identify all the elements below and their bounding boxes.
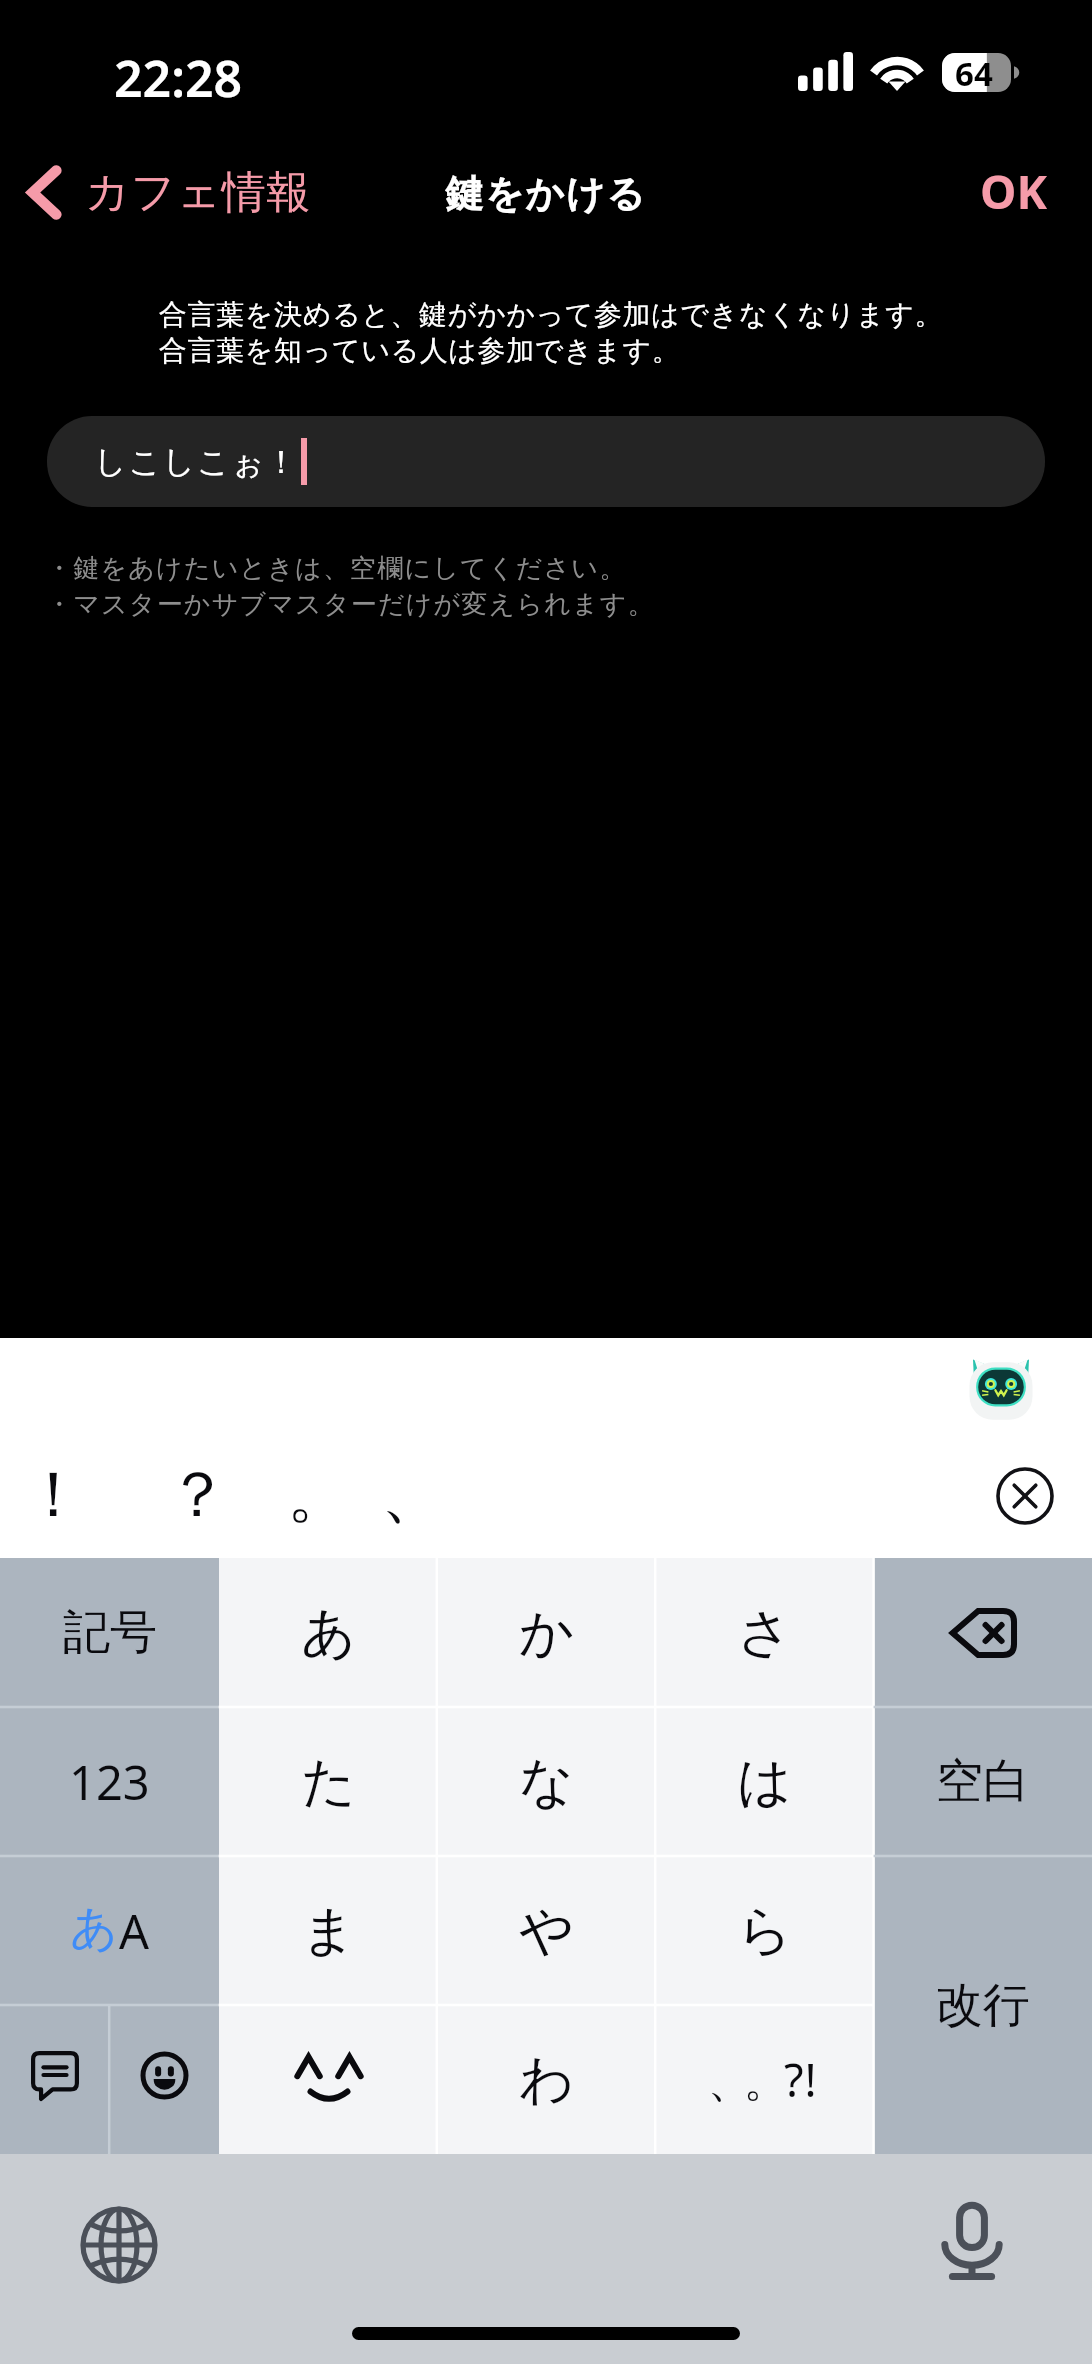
button[interactable]: ま (219, 1856, 438, 2005)
staticText: OK (980, 160, 1047, 223)
button[interactable]: Emoji (109, 2005, 219, 2154)
button[interactable]: は (656, 1707, 874, 1856)
button[interactable]: か (438, 1558, 656, 1707)
staticText: 、 (381, 1455, 444, 1534)
button[interactable]: Kaomoji (219, 2005, 438, 2154)
staticText: A (119, 1899, 150, 1963)
button[interactable]: や (438, 1856, 656, 2005)
staticText: ！ (22, 1455, 85, 1534)
button[interactable]: Conversion candidates (0, 2005, 109, 2154)
staticText: 改行 (936, 1976, 1030, 2035)
staticText: しこしこぉ！ (94, 442, 299, 482)
staticText: 、。 (712, 2053, 784, 2110)
staticText: さ (737, 1599, 793, 1667)
button[interactable]: 、。 (656, 2005, 874, 2154)
button[interactable]: Backspace (874, 1558, 1092, 1707)
button[interactable]: Dictation (932, 2202, 1012, 2282)
button[interactable]: Clear (996, 1467, 1054, 1525)
staticText: 64 (955, 51, 993, 90)
staticText: か (519, 1599, 575, 1667)
button[interactable]: た (219, 1707, 438, 1856)
button[interactable]: 改行 (874, 1856, 1092, 2154)
staticText: ま (301, 1897, 357, 1965)
staticText: た (301, 1748, 357, 1816)
button[interactable]: しこしこぉ！ (47, 416, 1045, 507)
staticText: あ (301, 1599, 357, 1667)
staticText: 。 (287, 1455, 350, 1534)
staticText: 鍵をかける (0, 170, 1092, 218)
staticText: 123 (69, 1750, 150, 1814)
staticText: ？ (166, 1455, 229, 1534)
button[interactable]: 、 (360, 1442, 464, 1546)
button[interactable]: あ (219, 1558, 438, 1707)
staticText: は (737, 1748, 793, 1816)
button[interactable]: あ (0, 1856, 219, 2005)
button[interactable]: 。 (266, 1442, 370, 1546)
staticText: ら (737, 1897, 793, 1965)
button[interactable]: ！ (1, 1442, 105, 1546)
button[interactable]: な (438, 1707, 656, 1856)
staticText: 記号 (63, 1603, 157, 1662)
button[interactable]: 記号 (0, 1558, 219, 1707)
button[interactable]: 空白 (874, 1707, 1092, 1856)
button[interactable]: OK (956, 148, 1071, 235)
staticText: 合言葉を決めると、鍵がかかって参加はできなくなります。 合言葉を知っている人は参… (159, 297, 944, 369)
staticText: ?! (784, 2049, 818, 2110)
button[interactable]: ら (656, 1856, 874, 2005)
staticText: な (519, 1748, 575, 1816)
staticText: ・鍵をあけたいときは、空欄にしてください。 ・マスターかサブマスターだけが変えら… (46, 552, 655, 621)
button[interactable]: さ (656, 1558, 874, 1707)
button[interactable]: わ (438, 2005, 656, 2154)
button[interactable]: 123 (0, 1707, 219, 1856)
staticText: わ (519, 2046, 575, 2114)
staticText: 22:28 (114, 44, 243, 112)
staticText: や (519, 1897, 575, 1965)
button[interactable]: カフェ情報 (0, 147, 329, 237)
staticText: あ (70, 1899, 119, 1958)
staticText: カフェ情報 (85, 165, 311, 220)
button[interactable]: Switch keyboard language (80, 2206, 158, 2284)
button[interactable]: ？ (145, 1442, 249, 1546)
staticText: 空白 (936, 1752, 1030, 1811)
